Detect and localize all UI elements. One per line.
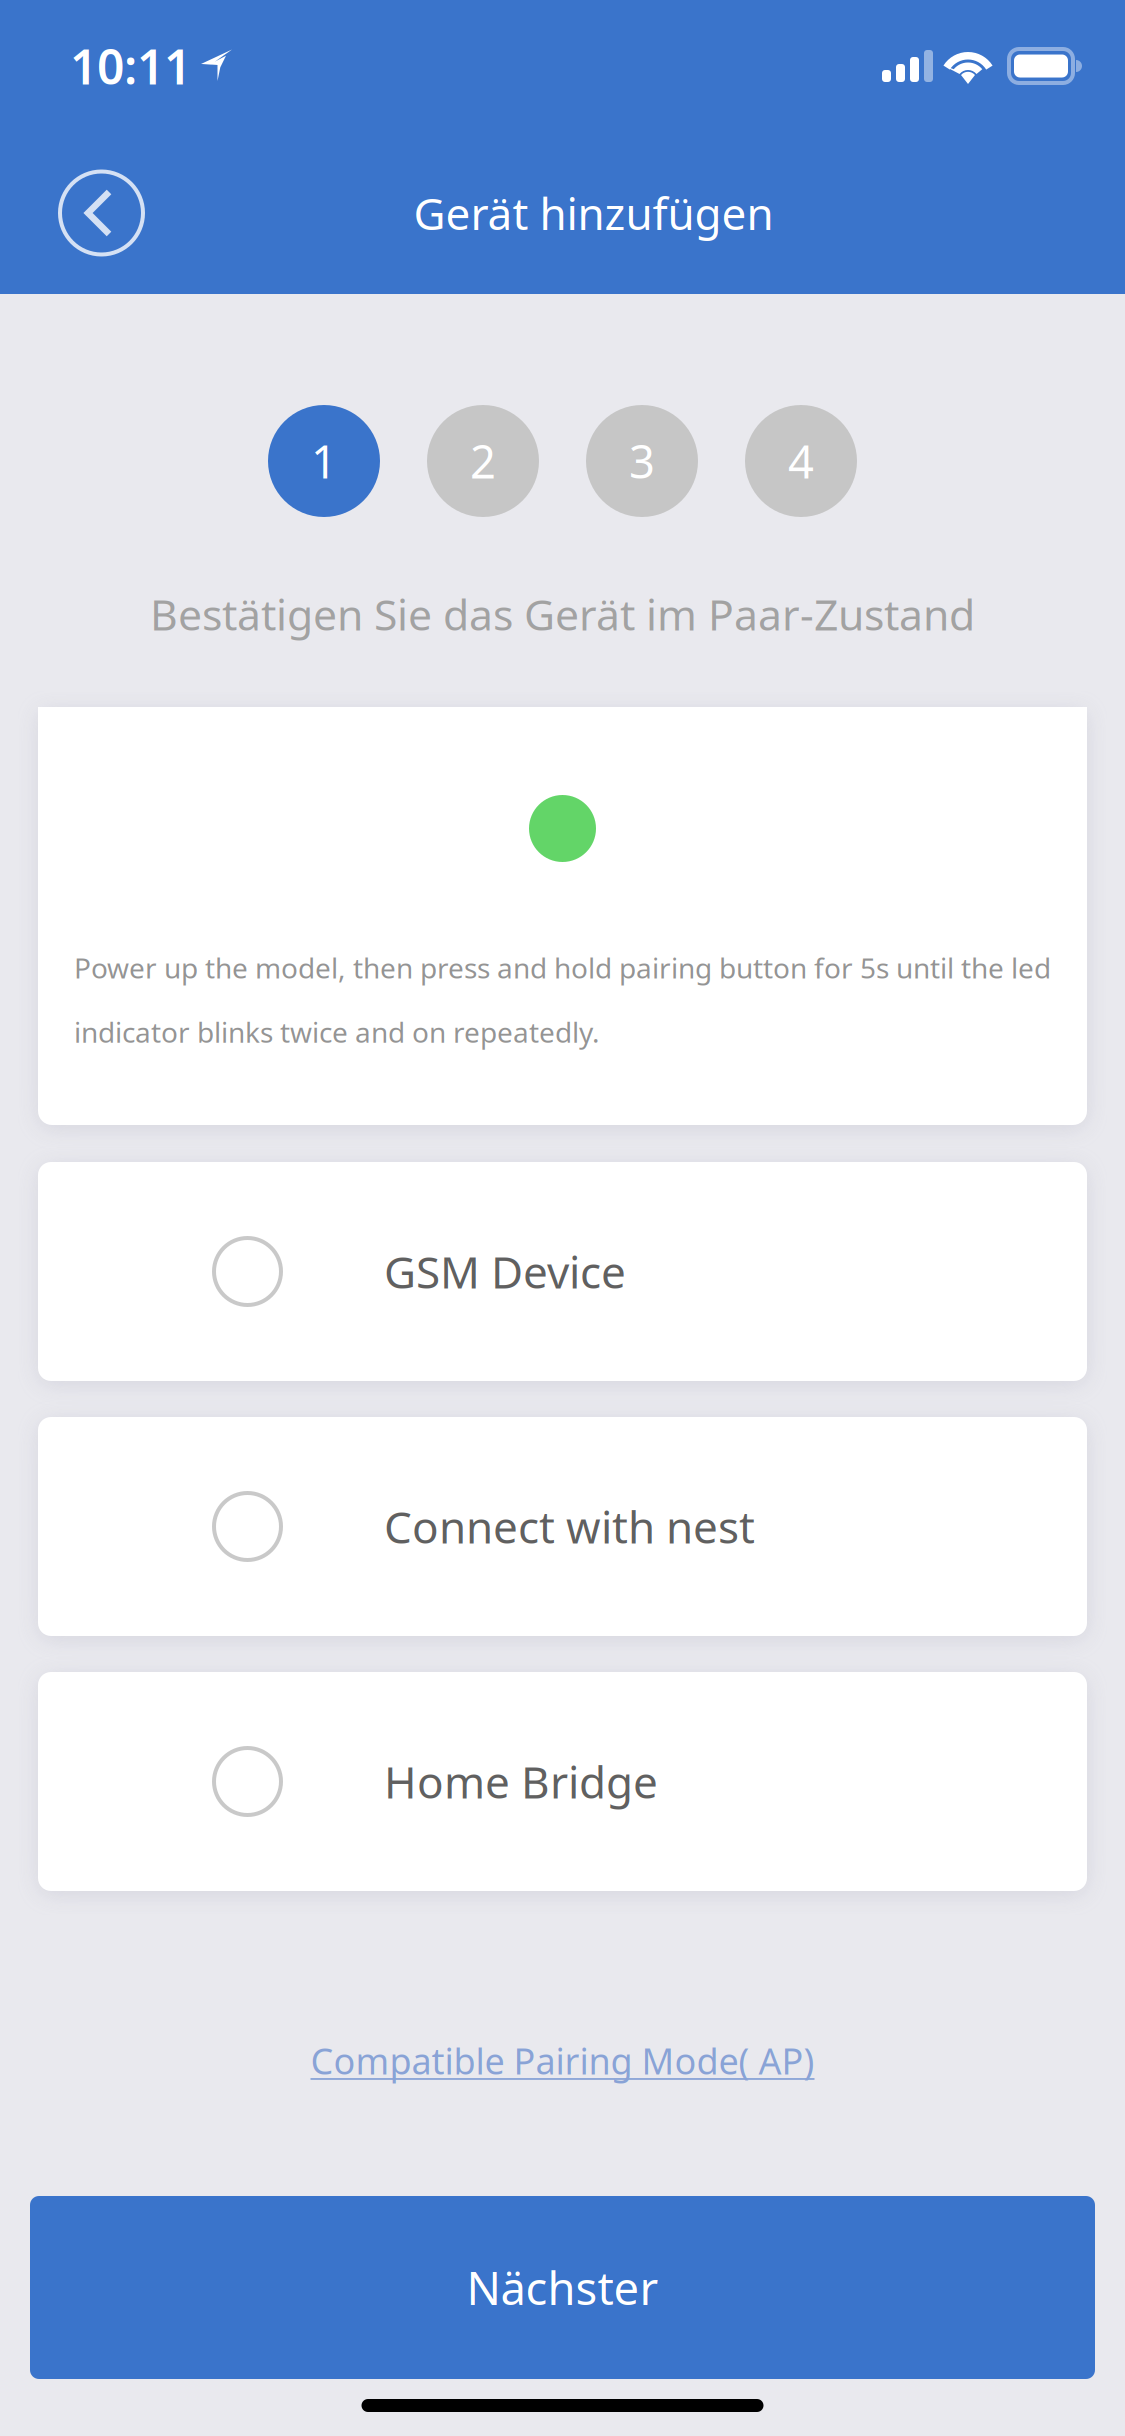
- button[interactable]: Back: [60, 171, 143, 254]
- button[interactable]: Nächster: [30, 2196, 1095, 2379]
- staticText: Nächster: [466, 2257, 658, 2318]
- staticText: Power up the model, then press and hold …: [74, 949, 1051, 1050]
- staticText: 3: [629, 431, 655, 491]
- staticText: 10:11: [70, 34, 191, 98]
- button[interactable]: Connect with nest: [38, 1417, 1087, 1636]
- button[interactable]: Compatible Pairing Mode( AP): [310, 1996, 814, 2090]
- staticText: Connect with nest: [384, 1497, 755, 1556]
- button[interactable]: GSM Device: [38, 1162, 1087, 1381]
- staticText: 4: [788, 431, 814, 491]
- staticText: Bestätigen Sie das Gerät im Paar-Zustand: [150, 586, 975, 642]
- staticText: Gerät hinzufügen: [413, 184, 773, 242]
- staticText: GSM Device: [384, 1242, 626, 1301]
- staticText: 2: [470, 431, 496, 491]
- button[interactable]: Home Bridge: [38, 1672, 1087, 1891]
- staticText: 1: [311, 431, 337, 491]
- staticText: Home Bridge: [384, 1752, 658, 1811]
- staticText: Compatible Pairing Mode( AP): [310, 2037, 814, 2084]
